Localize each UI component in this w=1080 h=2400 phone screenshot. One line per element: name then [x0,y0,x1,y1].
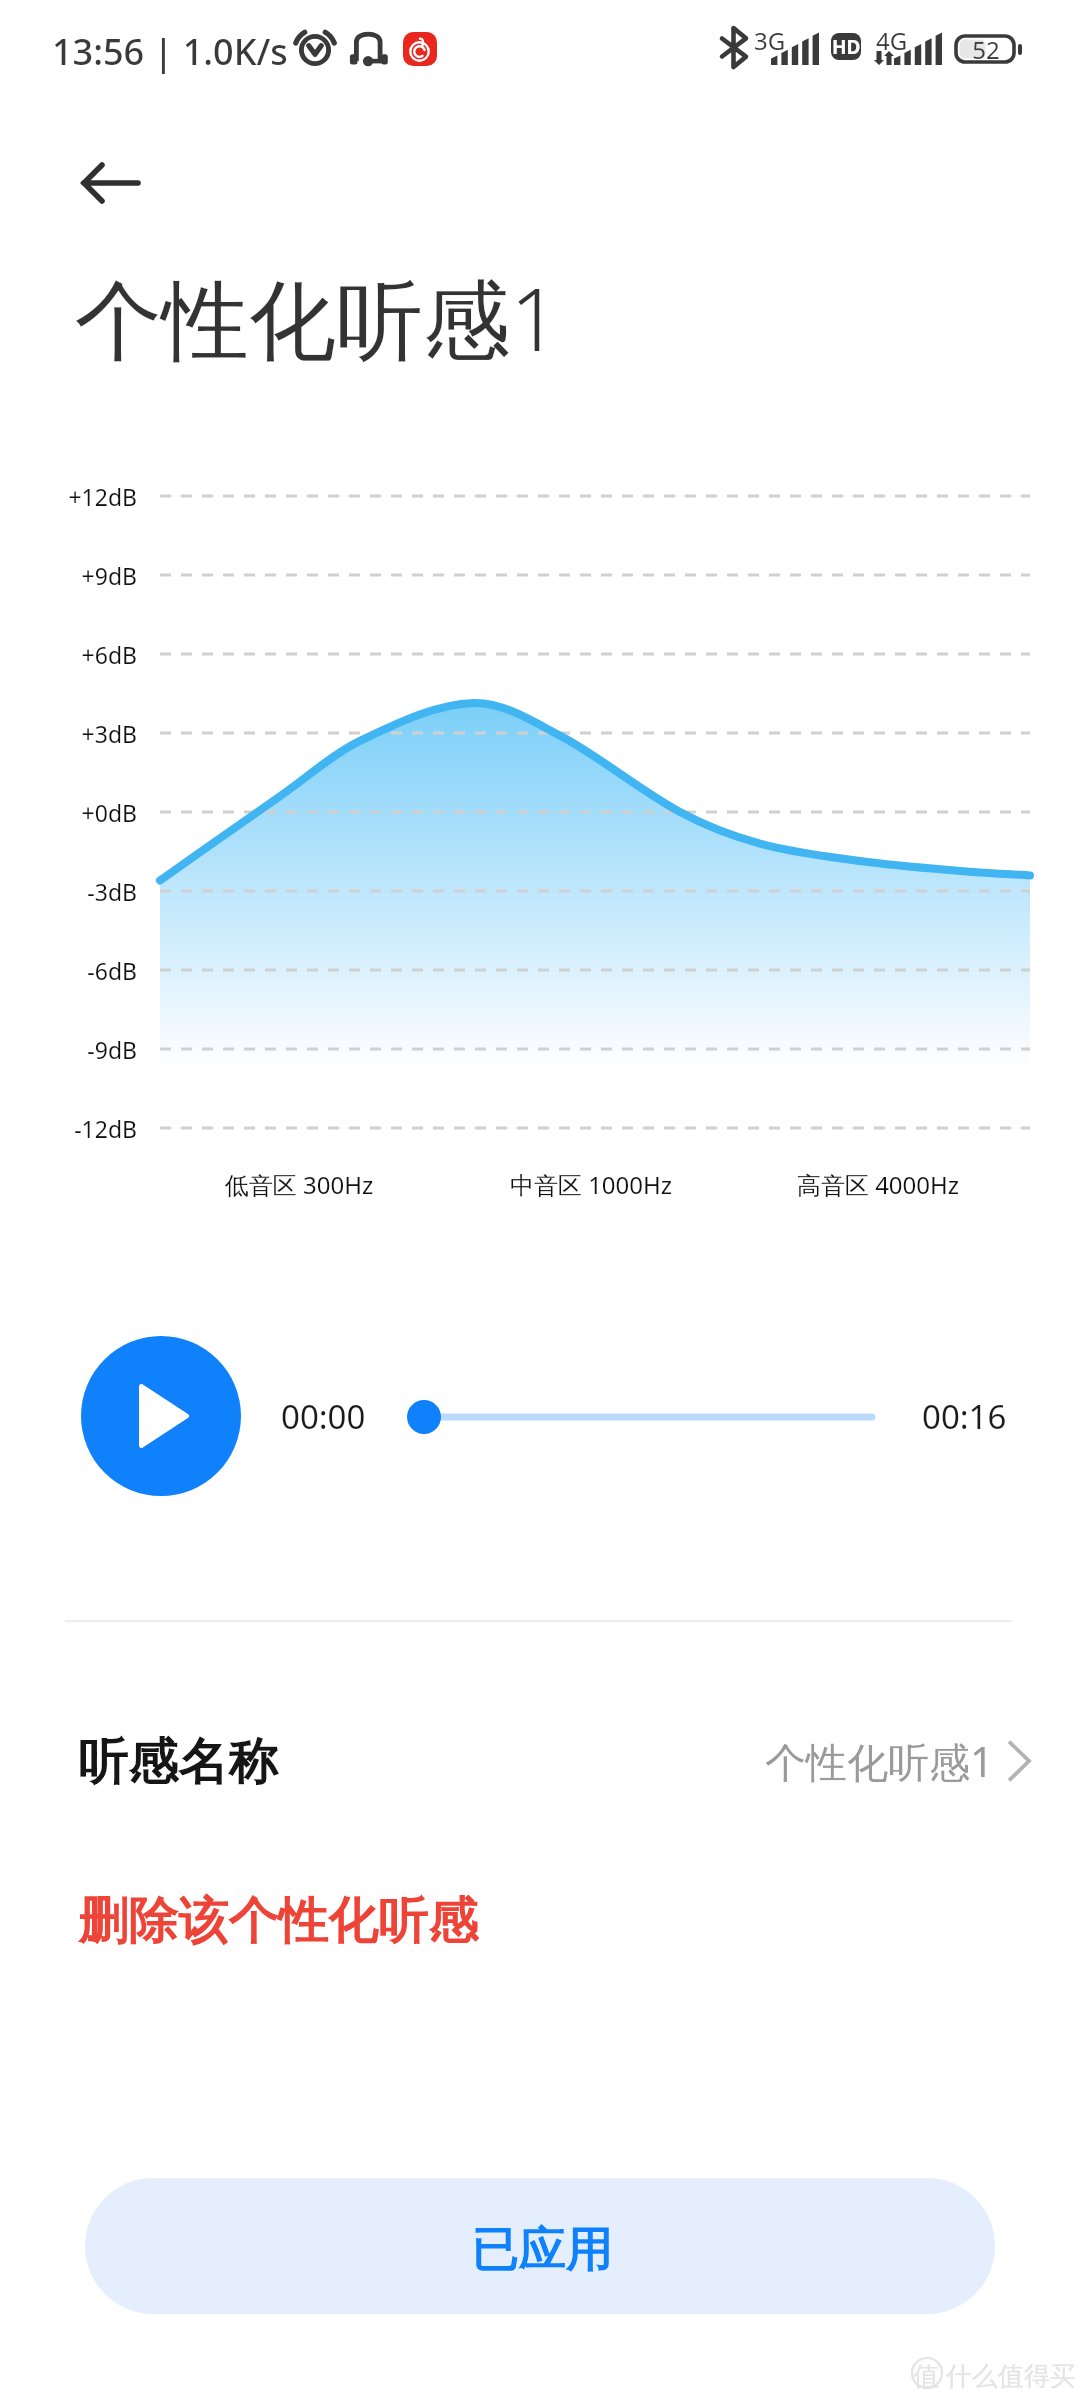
staticText: +6dB [0,639,137,670]
staticText: 已应用 [472,2220,613,2279]
staticText: 删除该个性化听感 [79,1889,479,1952]
staticText: 删除该个性化听感 [79,1889,479,1952]
button[interactable]: 已应用 [85,2178,995,2314]
button[interactable]: Back [52,128,157,233]
staticText: 13:56 | 1.0K/s [52,27,288,76]
staticText: 已应用 [472,2220,613,2279]
staticText: 00:00 [281,1394,366,1439]
staticText: 值 什么值得买 [913,2357,1076,2393]
staticText: 个性化听感1 [75,258,560,377]
staticText: +9dB [0,560,137,591]
staticText: +12dB [0,481,137,512]
staticText: 听感名称 [79,1730,279,1793]
staticText: +0dB [0,797,137,828]
button[interactable]: Seek [400,1392,890,1442]
staticText: -3dB [0,876,137,907]
staticText: 个性化听感1 [765,1733,994,1789]
staticText: 高音区 4000Hz [678,1168,1078,1201]
staticText: -6dB [0,955,137,986]
button[interactable]: 删除该个性化听感 [0,1860,1080,1980]
button[interactable]: 听感名称 [0,1691,1080,1831]
staticText: -12dB [0,1113,137,1144]
staticText: +3dB [0,718,137,749]
staticText: 52 [956,33,1016,66]
staticText: 中音区 1000Hz [391,1168,791,1201]
staticText: 听感名称 [79,1730,279,1793]
staticText: HD [832,34,861,60]
button[interactable]: Play [81,1336,241,1496]
staticText: -9dB [0,1034,137,1065]
staticText: 00:16 [922,1394,1007,1439]
staticText: 4G [876,24,908,57]
staticText: 3G [754,24,786,57]
button[interactable]: Music [403,32,437,66]
staticText: 低音区 300Hz [99,1168,499,1201]
